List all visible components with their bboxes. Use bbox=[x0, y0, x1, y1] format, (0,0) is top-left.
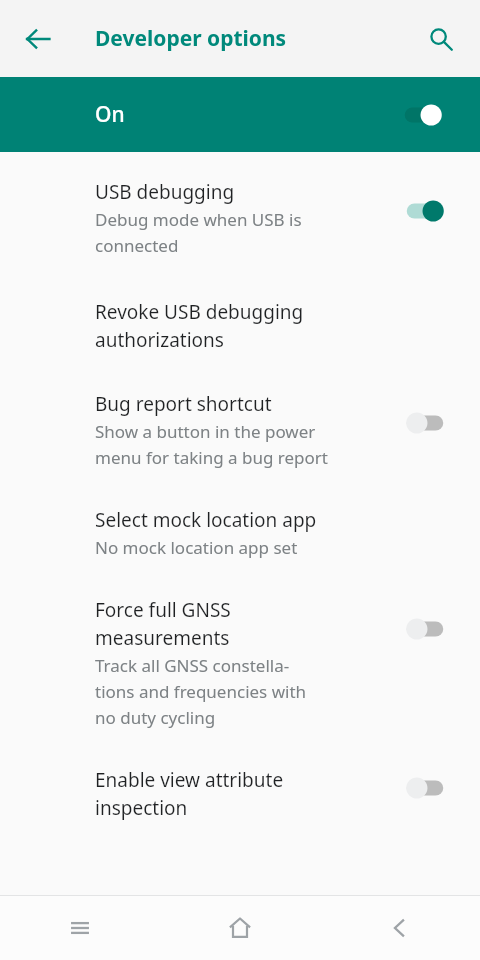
staticText: Bug report shortcut bbox=[95, 391, 272, 417]
button[interactable]: USB debugging bbox=[0, 152, 480, 257]
staticText: Select mock location app bbox=[95, 507, 317, 533]
staticText: Force full GNSS measurements bbox=[95, 597, 231, 651]
button[interactable]: Force full GNSS measurements bbox=[0, 559, 480, 729]
button[interactable]: Select mock location app bbox=[0, 469, 480, 559]
staticText: Revoke USB debugging authorizations bbox=[95, 299, 304, 353]
staticText: Developer options bbox=[95, 24, 287, 53]
button[interactable]: Home bbox=[160, 896, 320, 960]
button[interactable]: On bbox=[0, 77, 480, 152]
button[interactable]: Back bbox=[11, 12, 65, 66]
button[interactable]: Revoke USB debugging authorizations bbox=[0, 257, 480, 353]
staticText: On bbox=[95, 100, 125, 129]
staticText: Enable view attribute inspection bbox=[95, 767, 284, 821]
staticText: USB debugging bbox=[95, 179, 235, 205]
button[interactable]: Recent apps bbox=[0, 896, 160, 960]
staticText: Track all GNSS constella- tions and freq… bbox=[95, 654, 307, 729]
staticText: No mock location app set bbox=[95, 536, 298, 559]
button[interactable]: Search bbox=[416, 14, 466, 64]
staticText: Debug mode when USB is connected bbox=[95, 208, 302, 257]
button[interactable]: Enable view attribute inspection bbox=[0, 729, 480, 821]
staticText: Show a button in the power menu for taki… bbox=[95, 420, 328, 469]
button[interactable]: Bug report shortcut bbox=[0, 353, 480, 469]
button[interactable]: Back bbox=[320, 896, 480, 960]
